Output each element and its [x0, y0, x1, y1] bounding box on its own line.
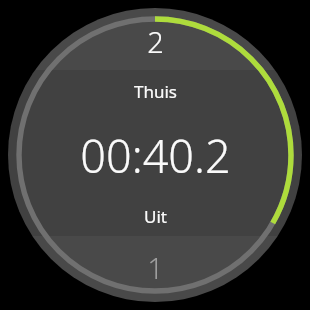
button[interactable]: Thuis	[0, 70, 310, 113]
button[interactable]: Home score 2	[0, 0, 310, 70]
button[interactable]: 00:40.2	[0, 113, 310, 197]
button[interactable]: Uit	[0, 197, 310, 236]
staticText: 1	[147, 248, 164, 287]
staticText: Thuis	[134, 80, 177, 103]
staticText: 00:40.2	[80, 125, 231, 186]
staticText: 2	[147, 22, 164, 61]
staticText: Uit	[144, 205, 167, 228]
button[interactable]: Away score 1	[0, 236, 310, 310]
